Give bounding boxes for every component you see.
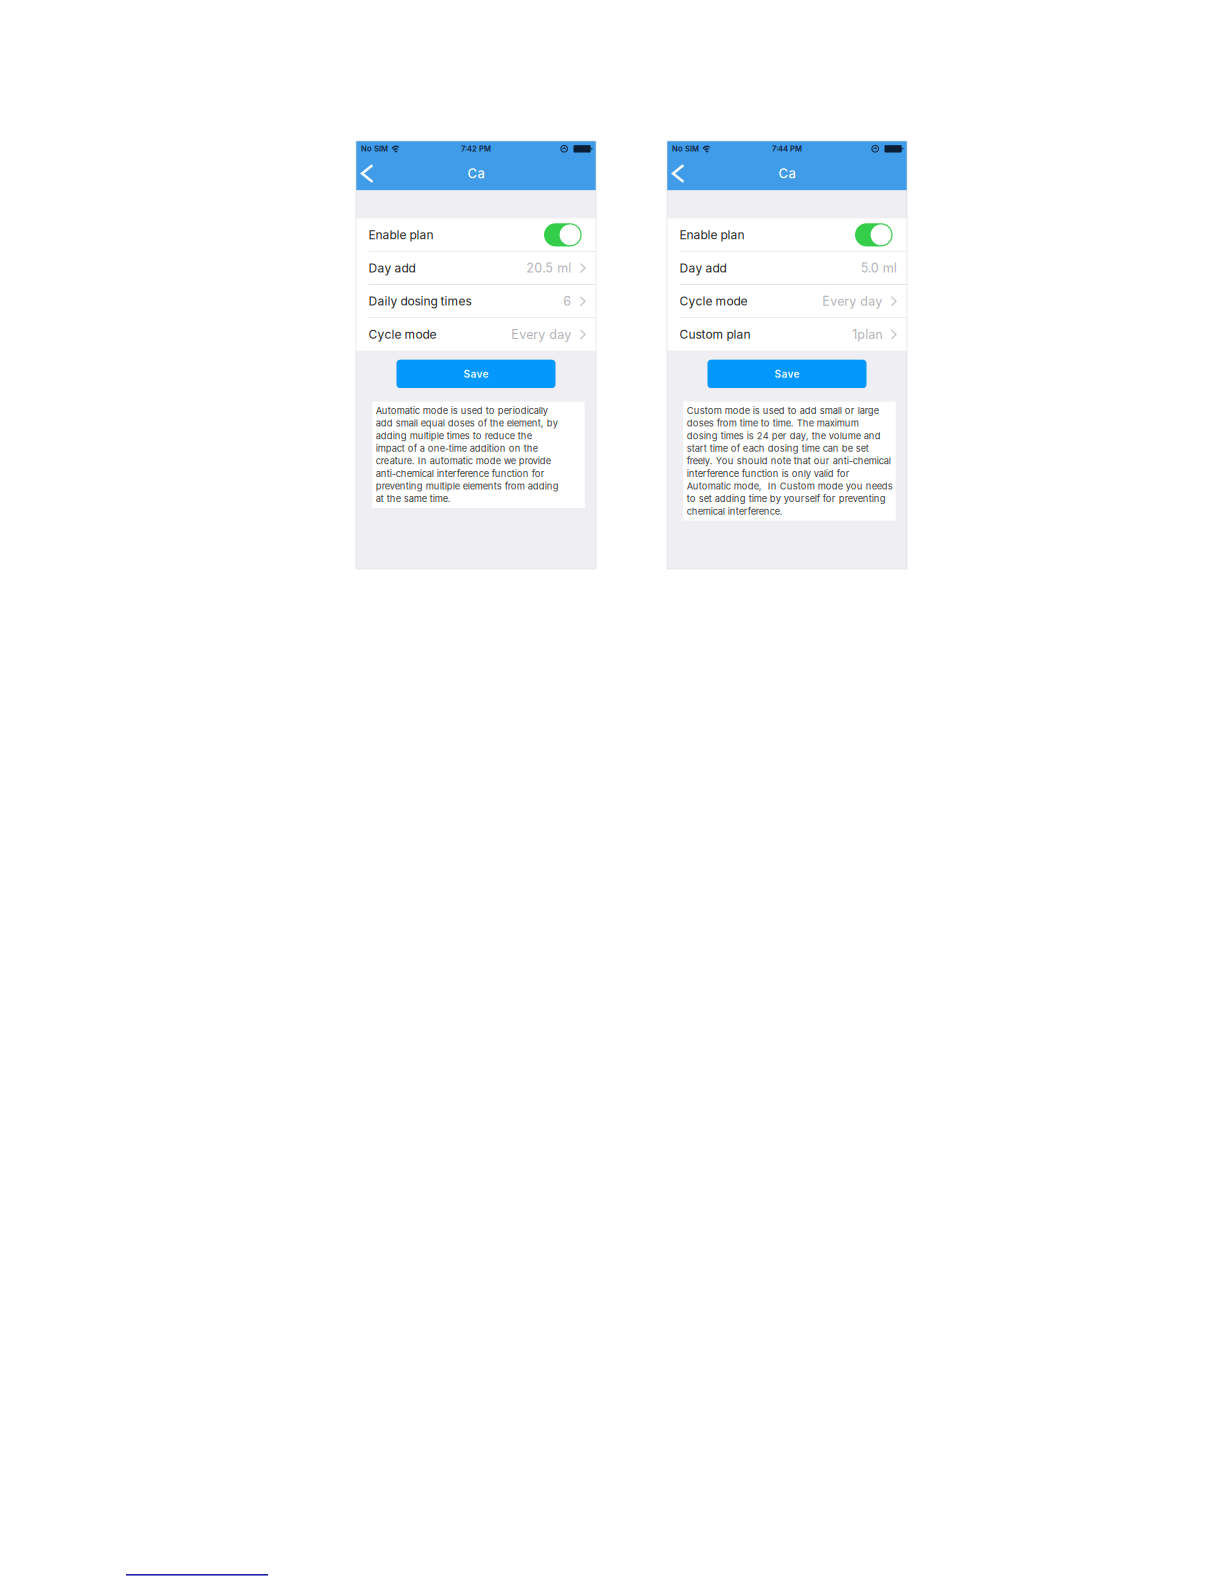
staticText: creature. In automatic mode we provide [376, 455, 551, 467]
staticText: Custom plan [679, 327, 750, 342]
staticText: Ca [467, 166, 484, 181]
button[interactable]: Cycle mode [356, 318, 596, 351]
staticText: 6 [563, 294, 571, 309]
staticText: Day add [679, 261, 726, 275]
staticText: No SIM [672, 144, 699, 153]
button[interactable]: Day add [356, 252, 596, 284]
staticText: Automatic mode is used to periodically [376, 405, 548, 416]
staticText: preventing multiple elements from adding [376, 480, 559, 492]
button[interactable]: Back [667, 157, 689, 190]
button[interactable]: Cycle mode [667, 285, 907, 317]
staticText: 7:44 PM [772, 144, 802, 153]
staticText: add small equal doses of the element, by [376, 417, 558, 429]
staticText: 20.5 ml [526, 260, 571, 276]
button[interactable]: Save [707, 360, 866, 388]
button[interactable]: Save [396, 360, 555, 388]
staticText: 5.0 ml [861, 260, 897, 276]
staticText: Save [774, 368, 799, 380]
staticText: doses from time to time. The maximum [687, 417, 859, 429]
button[interactable]: Day add [667, 252, 907, 284]
staticText: Daily dosing times [368, 294, 471, 308]
staticText: Every day [822, 294, 882, 309]
staticText: No SIM [361, 144, 388, 153]
staticText: dosing times is 24 per day, the volume a… [687, 430, 881, 441]
staticText: interference function is only valid for [687, 468, 850, 479]
staticText: adding multiple times to reduce the [376, 430, 532, 441]
staticText: Custom mode is used to add small or larg… [687, 405, 879, 416]
staticText: impact of a one-time addition on the [376, 443, 538, 454]
button[interactable]: Back [356, 157, 378, 190]
staticText: chemical interference. [687, 506, 783, 517]
button[interactable]: Custom plan [667, 318, 907, 351]
button[interactable]: Enable plan [667, 219, 907, 251]
staticText: start time of each dosing time can be se… [687, 443, 869, 454]
staticText: Enable plan [368, 228, 433, 242]
staticText: Enable plan [679, 228, 744, 242]
staticText: anti-chemical interference function for [376, 468, 545, 479]
button[interactable]: Enable plan [356, 219, 596, 251]
staticText: freely. You should note that our anti-ch… [687, 455, 891, 467]
button[interactable]: Daily dosing times [356, 285, 596, 317]
staticText: Cycle mode [368, 327, 436, 342]
staticText: Save [463, 368, 488, 380]
staticText: Automatic mode, In Custom mode you needs [687, 480, 893, 492]
staticText: Day add [368, 261, 415, 275]
staticText: to set adding time by yourself for preve… [687, 493, 886, 504]
staticText: 7:42 PM [461, 144, 491, 153]
staticText: at the same time. [376, 493, 451, 504]
staticText: Ca [778, 166, 795, 181]
staticText: 1plan [852, 327, 882, 342]
staticText: Cycle mode [679, 294, 747, 308]
staticText: Every day [511, 327, 571, 342]
